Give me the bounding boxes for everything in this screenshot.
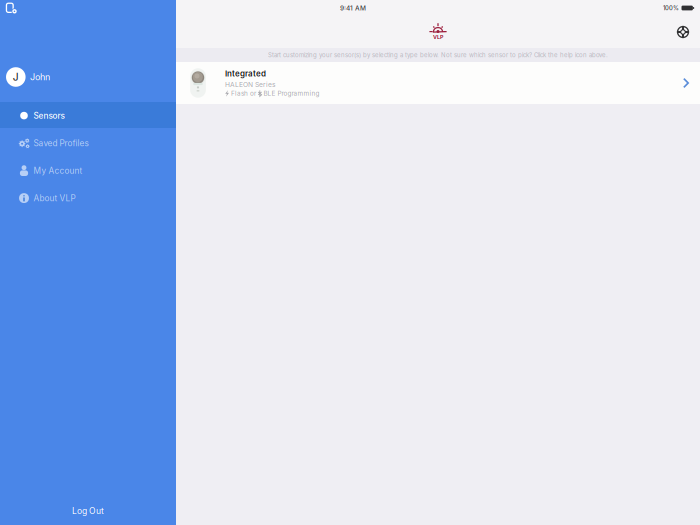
staticText: Log Out bbox=[72, 506, 104, 516]
button[interactable]: Log Out bbox=[0, 497, 176, 525]
button[interactable]: Sensors bbox=[0, 102, 176, 128]
button[interactable]: Saved Profiles bbox=[0, 129, 176, 155]
staticText: About VLP bbox=[33, 193, 75, 203]
staticText: John bbox=[30, 71, 50, 82]
button[interactable]: About VLP bbox=[0, 184, 176, 210]
staticText: Flash or bbox=[231, 89, 256, 97]
button[interactable]: Devices bbox=[3, 0, 21, 18]
staticText: BLE Programming bbox=[264, 89, 320, 97]
staticText: Saved Profiles bbox=[33, 138, 88, 148]
button[interactable]: My Account bbox=[0, 157, 176, 183]
staticText: VLP bbox=[433, 34, 443, 40]
button[interactable]: Integrated bbox=[176, 62, 700, 104]
staticText: Start customizing your sensor(s) by sele… bbox=[268, 51, 608, 59]
staticText: J bbox=[13, 71, 19, 83]
staticText: Integrated bbox=[225, 69, 266, 78]
staticText: HALEON Series bbox=[225, 80, 276, 88]
staticText: My Account bbox=[33, 166, 82, 176]
staticText: 9:41 AM bbox=[340, 4, 366, 12]
button[interactable]: Help bbox=[671, 20, 695, 44]
staticText: 100% bbox=[663, 4, 679, 12]
staticText: Sensors bbox=[33, 111, 64, 121]
button[interactable]: J bbox=[0, 65, 176, 89]
